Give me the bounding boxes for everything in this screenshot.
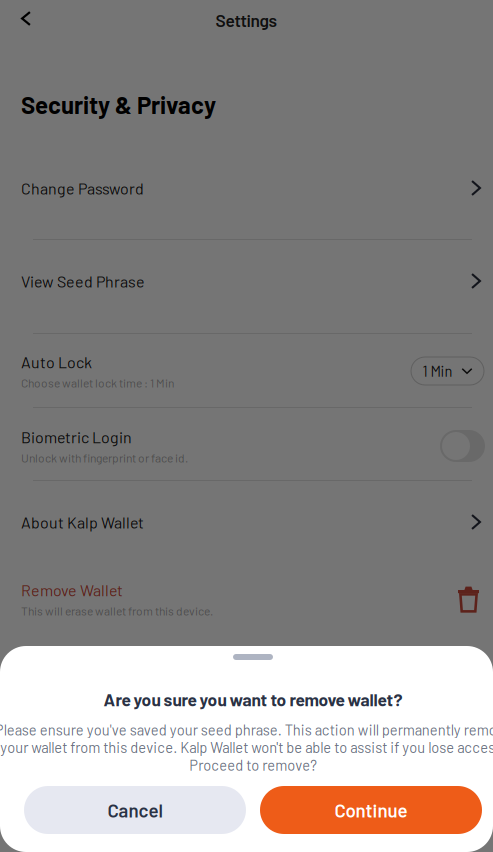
staticText: View Seed Phrase <box>21 271 145 291</box>
staticText: About Kalp Wallet <box>21 512 144 532</box>
button[interactable]: Remove Wallet <box>0 573 493 625</box>
staticText: Please ensure you've saved your seed phr… <box>0 721 493 774</box>
button[interactable]: Auto Lock <box>0 345 493 397</box>
staticText: Are you sure you want to remove wallet? <box>103 689 402 710</box>
staticText: Biometric Login <box>21 427 132 446</box>
staticText: Change Password <box>21 178 144 198</box>
button[interactable]: About Kalp Wallet <box>0 500 493 544</box>
button[interactable]: Cancel <box>24 786 246 834</box>
staticText: Continue <box>334 799 407 821</box>
button[interactable]: Back <box>0 0 47 40</box>
staticText: 1 Min <box>422 362 452 380</box>
staticText: Choose wallet lock time : 1 Min <box>21 375 174 390</box>
button[interactable]: Change Password <box>0 166 493 210</box>
staticText: Auto Lock <box>21 352 92 371</box>
staticText: Unlock with fingerprint or face id. <box>21 450 188 465</box>
staticText: Security & Privacy <box>21 90 216 119</box>
staticText: Settings <box>215 10 277 30</box>
button[interactable]: View Seed Phrase <box>0 259 493 303</box>
staticText: Remove Wallet <box>21 580 123 599</box>
staticText: Cancel <box>107 799 162 821</box>
button[interactable]: Continue <box>260 786 482 834</box>
staticText: This will erase wallet from this device. <box>21 603 213 618</box>
button[interactable]: Biometric Login <box>0 420 493 472</box>
